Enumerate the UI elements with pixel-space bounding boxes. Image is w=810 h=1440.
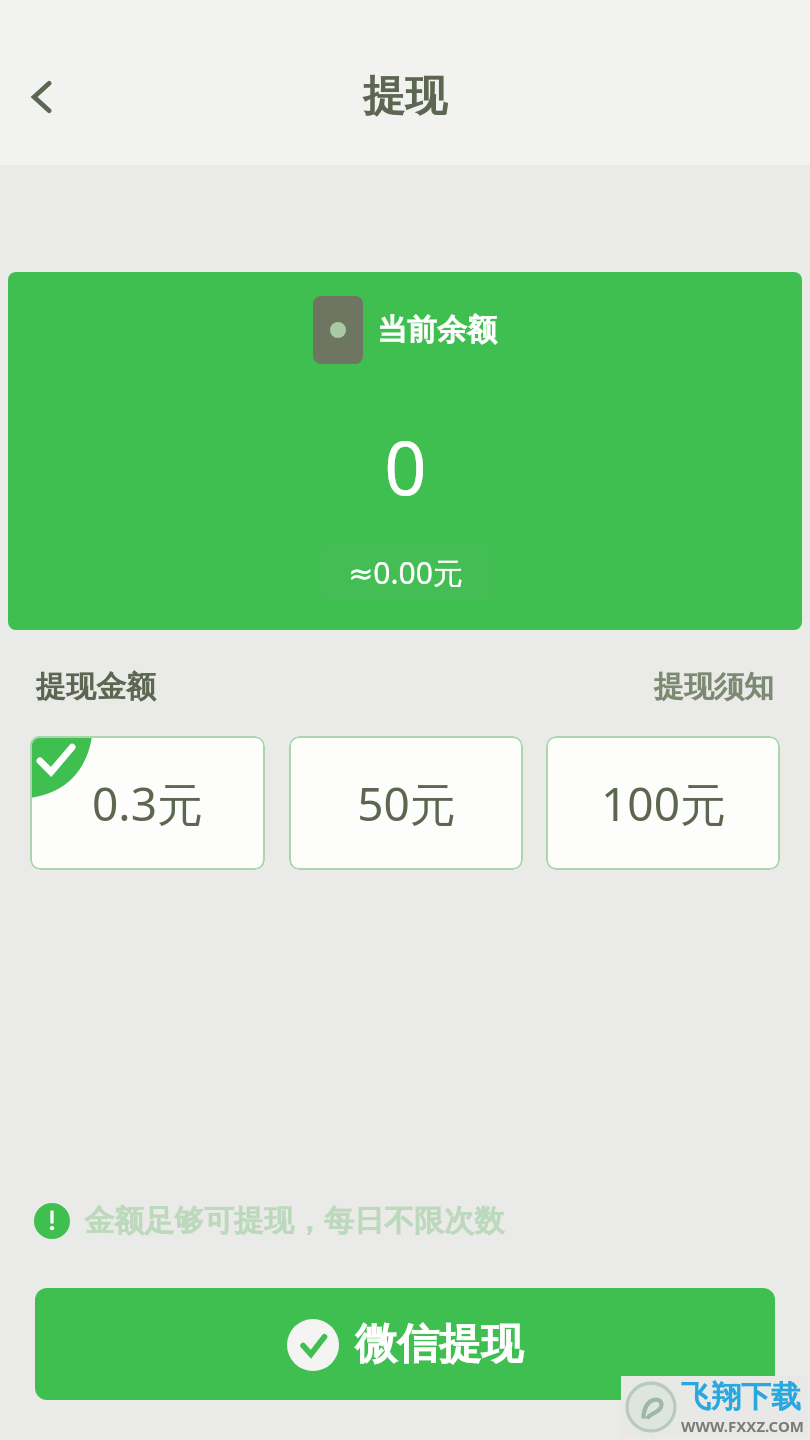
staticText: 提现	[363, 70, 447, 123]
staticText: 提现须知	[654, 668, 774, 706]
button[interactable]: 提现须知	[654, 668, 774, 706]
staticText: 0	[384, 416, 427, 517]
staticText: 0.3元	[92, 772, 203, 835]
staticText: 50元	[357, 772, 456, 835]
staticText: ≈0.00元	[348, 552, 463, 593]
button[interactable]: 当前余额	[8, 272, 802, 630]
staticText: 100元	[601, 772, 726, 835]
button[interactable]: 微信提现	[35, 1288, 775, 1400]
staticText: 当前余额	[377, 311, 497, 349]
button[interactable]: 0.3元	[30, 736, 265, 870]
button[interactable]: 50元	[289, 736, 523, 870]
button[interactable]: Back	[6, 61, 78, 133]
staticText: 金额足够可提现，每日不限次数	[84, 1202, 504, 1240]
staticText: 微信提现	[355, 1318, 523, 1371]
staticText: WWW.FXXZ.COM	[681, 1416, 804, 1436]
staticText: 飞翔下载	[681, 1378, 801, 1416]
staticText: 提现金额	[36, 668, 156, 706]
button[interactable]: 100元	[546, 736, 780, 870]
